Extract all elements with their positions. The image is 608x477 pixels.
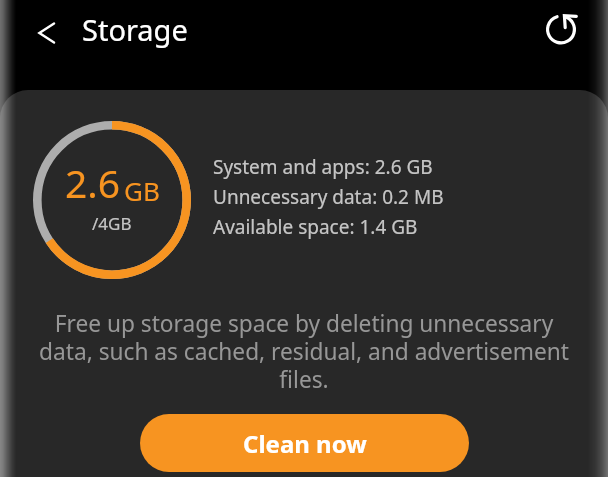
staticText: GB	[124, 173, 160, 208]
staticText: Clean now	[243, 427, 367, 460]
staticText: System and apps: 2.6 GB	[213, 154, 433, 180]
staticText: /4GB	[92, 212, 132, 235]
button[interactable]: Clean now	[140, 414, 469, 472]
button[interactable]: Back	[27, 14, 65, 52]
staticText: Free up storage space by deleting unnece…	[30, 308, 578, 394]
staticText: 2.6	[65, 156, 121, 209]
staticText: Available space: 1.4 GB	[213, 214, 418, 240]
staticText: Storage	[82, 10, 188, 49]
staticText: Unnecessary data: 0.2 MB	[213, 184, 444, 210]
button[interactable]: Refresh	[539, 6, 583, 50]
